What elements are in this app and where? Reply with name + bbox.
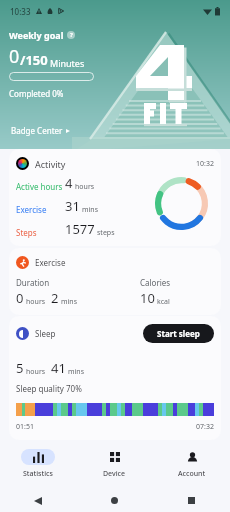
button[interactable]: Device	[76, 440, 153, 489]
staticText: Account	[178, 469, 206, 479]
staticText: 10	[140, 289, 155, 307]
staticText: /150	[20, 51, 48, 69]
button[interactable]: Start sleep	[143, 324, 214, 343]
button[interactable]: Badge Center	[8, 122, 73, 139]
staticText: 0	[16, 289, 24, 307]
staticText: Device	[103, 469, 126, 479]
staticText: Start sleep	[157, 328, 200, 339]
staticText: hours	[26, 297, 46, 307]
staticText: Sleep quality 70%	[16, 383, 82, 394]
staticText: Sleep	[35, 328, 56, 339]
staticText: Calories	[140, 277, 171, 288]
button[interactable]: Home	[76, 489, 153, 512]
staticText: 4	[65, 174, 73, 192]
staticText: Minutes	[50, 57, 85, 69]
staticText: mins	[68, 367, 85, 377]
staticText: 01:51	[16, 422, 34, 432]
staticText: Active hours	[16, 181, 63, 192]
button[interactable]: Activity	[9, 149, 221, 246]
staticText: hours	[75, 182, 95, 192]
button[interactable]: Sleep	[9, 316, 221, 440]
staticText: 10:32	[196, 159, 214, 169]
staticText: ?	[70, 31, 73, 39]
staticText: kcal	[157, 297, 170, 307]
staticText: Badge Center	[11, 125, 63, 136]
staticText: Duration	[16, 277, 50, 288]
button[interactable]: Exercise	[9, 248, 221, 315]
staticText: 41	[51, 359, 66, 377]
staticText: Weekly goal	[9, 29, 64, 41]
staticText: mins	[82, 205, 99, 215]
button[interactable]: Account	[153, 440, 230, 489]
staticText: Statistics	[23, 469, 53, 479]
staticText: 1577	[65, 220, 95, 238]
button[interactable]: Recents	[153, 489, 230, 512]
staticText: 2	[51, 289, 59, 307]
staticText: 5	[16, 359, 24, 377]
staticText: hours	[26, 367, 46, 377]
button[interactable]: Back	[0, 489, 76, 512]
staticText: 0	[9, 44, 20, 69]
staticText: mins	[61, 297, 78, 307]
staticText: Completed 0%	[9, 88, 64, 99]
staticText: 07:32	[196, 422, 214, 432]
staticText: Exercise	[35, 257, 66, 268]
staticText: 10:33	[10, 6, 31, 17]
staticText: steps	[97, 228, 115, 238]
staticText: Exercise	[16, 204, 47, 215]
staticText: Activity	[35, 158, 66, 170]
staticText: Steps	[16, 227, 37, 238]
staticText: 31	[65, 197, 80, 215]
button[interactable]: Statistics	[0, 440, 76, 489]
